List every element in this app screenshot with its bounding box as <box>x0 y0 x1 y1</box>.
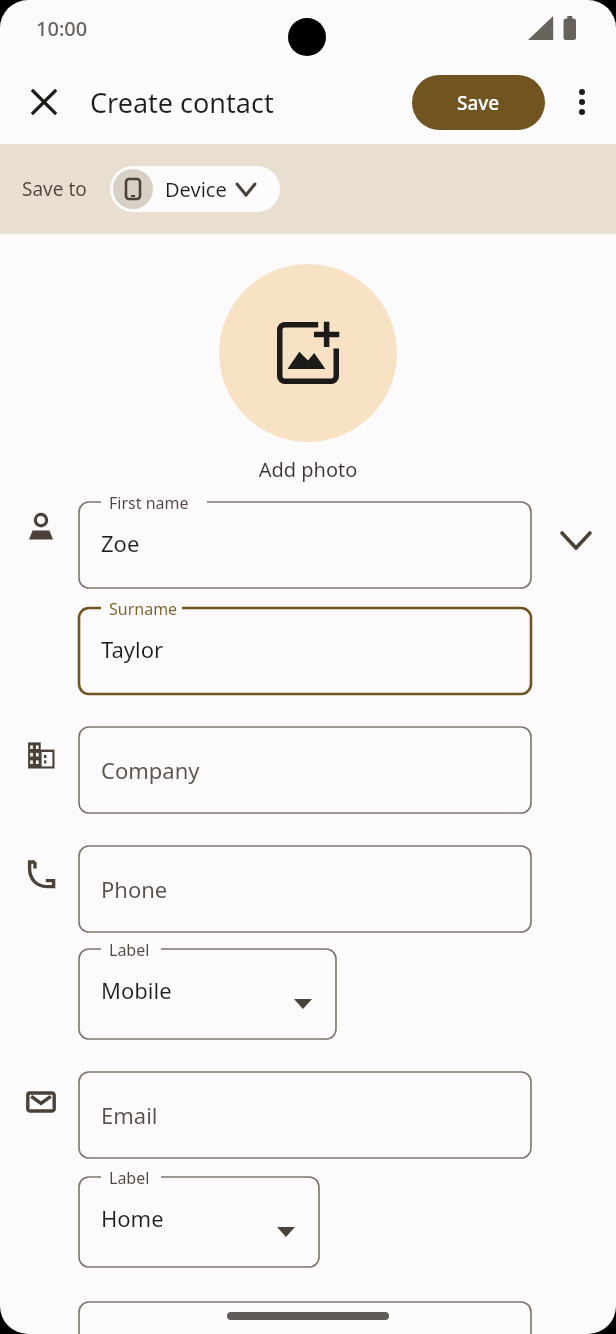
staticText: Label <box>109 939 150 961</box>
staticText: Taylor <box>101 634 164 664</box>
button[interactable]: First name <box>79 502 531 588</box>
staticText: Create contact <box>90 84 274 121</box>
staticText: Surname <box>109 598 178 620</box>
staticText: Save <box>457 90 500 116</box>
staticText: 10:00 <box>36 15 88 42</box>
button[interactable]: Company <box>79 727 531 813</box>
button[interactable]: Label <box>79 1177 319 1267</box>
staticText: Label <box>109 1167 150 1189</box>
staticText: Home <box>101 1203 164 1233</box>
staticText: Email <box>101 1100 158 1130</box>
button[interactable]: Add photo <box>219 264 397 442</box>
button[interactable]: Label <box>79 949 336 1039</box>
staticText: First name <box>109 492 189 514</box>
button[interactable]: Email <box>79 1072 531 1158</box>
button[interactable]: Phone <box>79 846 531 932</box>
button[interactable]: More options <box>554 74 610 130</box>
button[interactable]: Surname <box>79 608 531 694</box>
button[interactable]: Expand name fields <box>550 514 602 566</box>
staticText: Add photo <box>0 456 616 483</box>
button[interactable]: Save <box>412 75 545 130</box>
button[interactable]: Close <box>16 74 72 130</box>
staticText: Company <box>101 755 200 785</box>
button[interactable]: Device <box>110 166 280 212</box>
staticText: Mobile <box>101 975 172 1005</box>
staticText: Device <box>165 176 227 203</box>
staticText: Save to <box>22 176 87 202</box>
staticText: Zoe <box>101 528 140 558</box>
button[interactable] <box>79 1302 531 1334</box>
staticText: Phone <box>101 874 168 904</box>
